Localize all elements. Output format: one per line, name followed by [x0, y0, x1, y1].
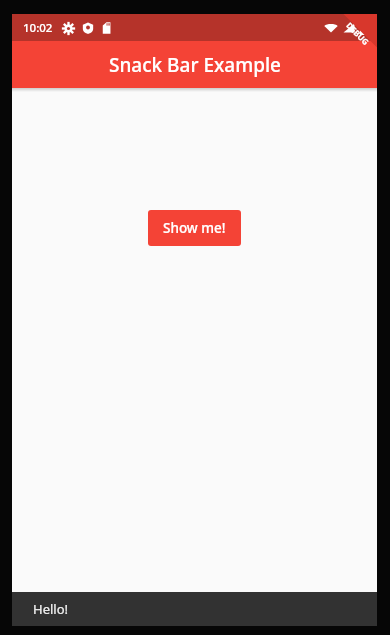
button[interactable]: Show me! — [148, 210, 241, 246]
staticText: 10:02 — [23, 20, 53, 36]
staticText: DEBUG — [344, 20, 372, 47]
other: Debug banner — [321, 14, 377, 70]
staticText: Show me! — [163, 219, 226, 237]
button[interactable]: Hello! — [12, 592, 377, 626]
staticText: Hello! — [33, 600, 69, 618]
staticText: Snack Bar Example — [109, 52, 281, 78]
